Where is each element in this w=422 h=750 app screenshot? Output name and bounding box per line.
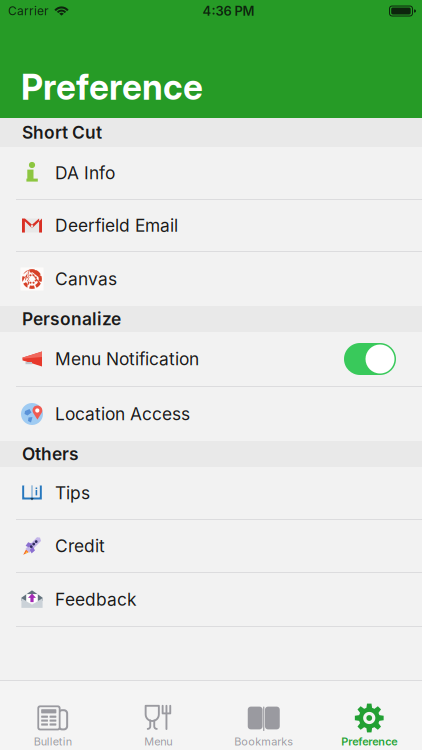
staticText: Short Cut [22, 122, 102, 143]
button[interactable]: Deerfield Email [0, 200, 422, 252]
staticText: Carrier [8, 4, 49, 18]
button[interactable]: Preference [316, 681, 422, 750]
staticText: Canvas [55, 268, 117, 289]
staticText: Bulletin [34, 735, 72, 748]
button[interactable]: Credit [0, 520, 422, 573]
staticText: Menu Notification [55, 348, 199, 369]
button[interactable]: Bookmarks [211, 681, 316, 750]
staticText: Tips [55, 482, 90, 503]
staticText: Feedback [55, 589, 137, 610]
button[interactable]: Menu Notification [0, 332, 422, 387]
staticText: Others [22, 443, 79, 464]
staticText: 4:36 PM [202, 3, 254, 19]
staticText: Personalize [22, 308, 121, 329]
staticText: Preference [341, 735, 397, 748]
staticText: DA Info [55, 162, 115, 183]
button[interactable]: Bulletin [0, 681, 105, 750]
staticText: Menu [144, 735, 172, 748]
staticText: Preference [21, 66, 203, 108]
staticText: Deerfield Email [55, 215, 178, 236]
button[interactable]: DA Info [0, 147, 422, 200]
button[interactable]: Menu [105, 681, 211, 750]
button[interactable]: Canvas [0, 252, 422, 306]
staticText: Location Access [55, 403, 190, 424]
button[interactable]: Location Access [0, 387, 422, 441]
button[interactable]: Tips [0, 467, 422, 520]
staticText: Bookmarks [234, 735, 293, 748]
staticText: Credit [55, 535, 105, 556]
button[interactable]: Feedback [0, 573, 422, 627]
